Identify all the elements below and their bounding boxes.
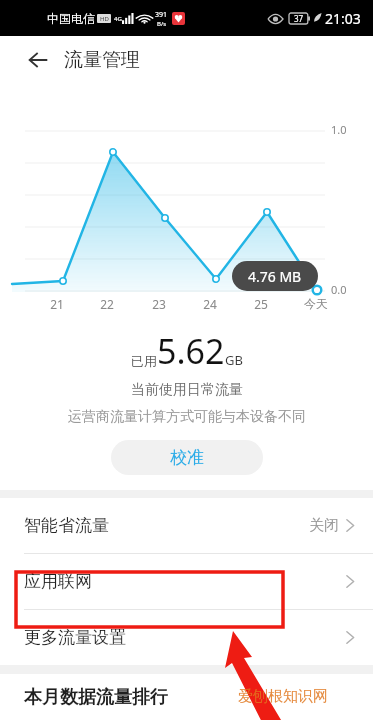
staticText: B/s (157, 20, 167, 28)
staticText: 37 (294, 13, 304, 24)
button[interactable]: 应用联网 (0, 554, 373, 609)
staticText: 本月数据流量排行 (24, 686, 168, 709)
staticText: 运营商流量计算方式可能与本设备不同 (68, 408, 306, 426)
staticText: 更多流量设置 (24, 627, 126, 648)
staticText: 5.62 (157, 328, 225, 374)
staticText: GB (225, 351, 243, 369)
staticText: 25 (254, 296, 268, 312)
staticText: 爱刨根知识网 (238, 687, 328, 706)
staticText: 流量管理 (64, 48, 140, 72)
staticText: 4.76 MB (248, 267, 302, 286)
staticText: 24 (203, 296, 217, 312)
button[interactable]: 校准 (111, 440, 263, 475)
staticText: 0.0 (331, 282, 347, 297)
button[interactable]: Back (20, 42, 56, 78)
staticText: 关闭 (309, 516, 339, 535)
staticText: 21 (50, 296, 64, 312)
staticText: 22 (100, 296, 114, 312)
staticText: 今天 (304, 296, 328, 311)
button[interactable]: 智能省流量 (0, 498, 373, 553)
staticText: 应用联网 (24, 571, 92, 592)
staticText: 1.0 (331, 122, 347, 137)
staticText: 21:03 (325, 9, 361, 28)
staticText: 已用 (131, 353, 157, 369)
staticText: 智能省流量 (24, 515, 109, 536)
staticText: 391 (155, 10, 168, 20)
button[interactable]: 更多流量设置 (0, 610, 373, 665)
staticText: 23 (152, 296, 166, 312)
staticText: 4G (114, 15, 122, 23)
staticText: 校准 (170, 447, 204, 468)
staticText: HD (100, 15, 109, 23)
staticText: 中国电信 (47, 11, 95, 26)
staticText: 当前使用日常流量 (131, 381, 243, 399)
